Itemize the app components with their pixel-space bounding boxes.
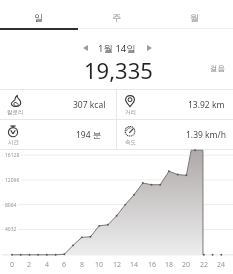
staticText: 0 xyxy=(10,260,15,270)
staticText: 24 xyxy=(217,260,226,270)
button[interactable]: 시간 xyxy=(0,120,116,149)
staticText: 6 xyxy=(62,260,67,270)
button[interactable]: 거리 xyxy=(117,90,233,119)
staticText: 8064 xyxy=(5,202,17,209)
staticText: 1월 14일 xyxy=(98,42,136,55)
staticText: 12096 xyxy=(5,177,20,184)
staticText: 주 xyxy=(112,12,121,23)
staticText: 13.92 km xyxy=(188,99,225,111)
staticText: 194 분 xyxy=(76,129,102,141)
staticText: 4032 xyxy=(5,226,17,233)
staticText: 19,335 xyxy=(84,55,153,83)
staticText: 월 xyxy=(190,12,199,23)
staticText: 10 xyxy=(95,260,104,270)
staticText: 20 xyxy=(182,260,191,270)
staticText: 16128 xyxy=(5,152,20,159)
button[interactable]: 칼로리 xyxy=(0,90,116,119)
button[interactable]: Previous day xyxy=(79,42,91,54)
staticText: 307 kcal xyxy=(73,99,106,111)
staticText: 칼로리 xyxy=(7,109,24,116)
staticText: 거리 xyxy=(125,109,136,116)
staticText: 1.39 km/h xyxy=(186,129,226,141)
staticText: 시간 xyxy=(8,139,19,146)
staticText: 8 xyxy=(80,260,85,270)
staticText: 12 xyxy=(113,260,122,270)
staticText: 4 xyxy=(45,260,50,270)
button[interactable]: 속도 xyxy=(117,120,233,149)
button[interactable]: 주 xyxy=(77,3,155,32)
button[interactable]: Next day xyxy=(143,42,155,54)
staticText: 14 xyxy=(130,260,139,270)
button[interactable]: 월 xyxy=(155,3,233,32)
staticText: 16 xyxy=(148,260,157,270)
staticText: 18 xyxy=(165,260,174,270)
staticText: 22 xyxy=(200,260,209,270)
button[interactable]: 일 xyxy=(0,3,77,32)
staticText: 속도 xyxy=(125,139,136,146)
staticText: 일 xyxy=(34,12,43,23)
staticText: 2 xyxy=(27,260,32,270)
staticText: 걸음 xyxy=(210,64,225,73)
